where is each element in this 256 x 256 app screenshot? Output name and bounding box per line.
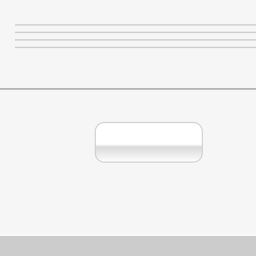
button[interactable]: Row: [0, 41, 256, 48]
button[interactable]: Row: [0, 26, 256, 33]
button[interactable]: Row: [0, 18, 256, 26]
button[interactable]: Field: [95, 122, 202, 162]
button[interactable]: Row: [0, 33, 256, 41]
